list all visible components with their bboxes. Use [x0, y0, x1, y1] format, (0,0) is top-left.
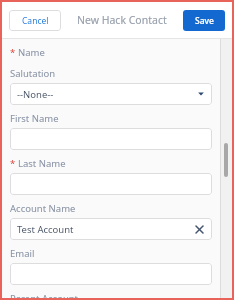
staticText: Account Name: [10, 202, 76, 215]
button[interactable]: --None--: [10, 83, 212, 105]
other: Scroll position: [224, 143, 228, 177]
staticText: Parent Account: [10, 292, 79, 298]
staticText: *: [10, 157, 16, 170]
button[interactable]: Save: [183, 10, 225, 31]
staticText: Email: [10, 247, 35, 260]
staticText: --None--: [17, 88, 54, 101]
button[interactable]: Test Account: [10, 218, 212, 240]
staticText: First Name: [10, 112, 59, 125]
staticText: Cancel: [22, 15, 49, 27]
button[interactable]: Clear Test Account: [193, 223, 206, 236]
staticText: Save: [195, 15, 214, 27]
button[interactable]: [10, 128, 212, 150]
staticText: *: [10, 46, 16, 59]
staticText: Salutation: [10, 67, 56, 80]
button[interactable]: [10, 263, 212, 285]
staticText: Test Account: [17, 223, 74, 236]
button[interactable]: Cancel: [9, 10, 61, 31]
staticText: Last Name: [18, 157, 66, 170]
staticText: Name: [18, 46, 45, 59]
button[interactable]: [10, 173, 212, 195]
staticText: New Hack Contact: [77, 13, 167, 27]
other: Open picklist: [197, 90, 205, 98]
